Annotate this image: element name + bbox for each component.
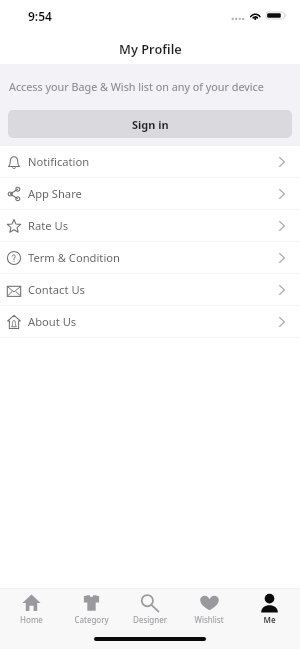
staticText: Me bbox=[263, 614, 276, 625]
button[interactable]: Wishlist bbox=[181, 589, 237, 629]
button[interactable]: Home bbox=[3, 589, 59, 629]
button[interactable]: Notification bbox=[0, 146, 300, 177]
button[interactable]: Contact Us bbox=[0, 274, 300, 305]
staticText: Sign in bbox=[132, 117, 169, 132]
staticText: Designer bbox=[133, 614, 167, 625]
staticText: App Share bbox=[28, 186, 82, 201]
staticText: Notification bbox=[28, 154, 90, 169]
button[interactable]: Rate Us bbox=[0, 210, 300, 241]
staticText: Contact Us bbox=[28, 282, 85, 297]
staticText: Wishlist bbox=[194, 614, 224, 625]
button[interactable]: Sign in bbox=[8, 110, 292, 138]
button[interactable]: About Us bbox=[0, 306, 300, 337]
staticText: Rate Us bbox=[28, 218, 69, 233]
staticText: 9:54 bbox=[28, 8, 52, 24]
staticText: Term & Condition bbox=[28, 250, 120, 265]
staticText: Access your Bage & Wish list on any of y… bbox=[9, 79, 300, 94]
button[interactable]: Term & Condition bbox=[0, 242, 300, 273]
button[interactable]: Designer bbox=[122, 589, 178, 629]
staticText: Home bbox=[20, 614, 43, 625]
button[interactable]: Me bbox=[241, 589, 297, 629]
staticText: About Us bbox=[28, 314, 77, 329]
button[interactable]: Category bbox=[63, 589, 119, 629]
staticText: Category bbox=[74, 614, 109, 625]
staticText: My Profile bbox=[119, 40, 182, 57]
button[interactable]: App Share bbox=[0, 178, 300, 209]
